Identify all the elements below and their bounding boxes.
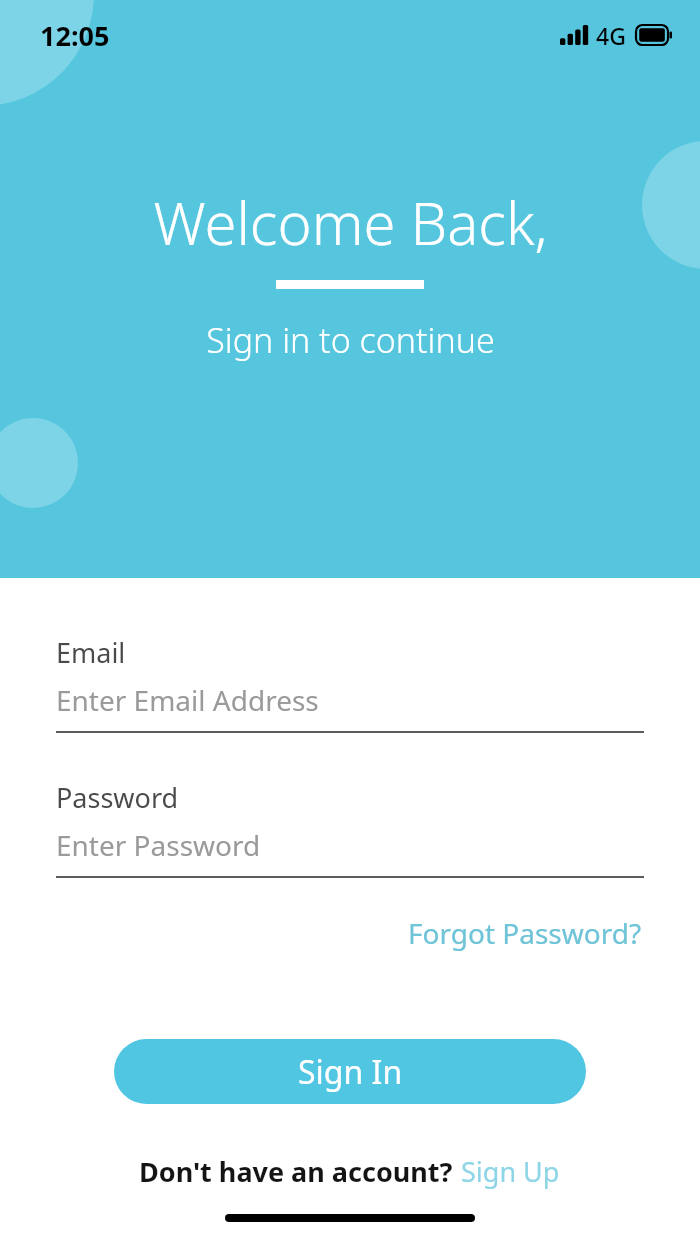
staticText: Forgot Password? [408, 914, 642, 952]
staticText: Don't have an account? [139, 1153, 460, 1190]
button[interactable]: Forgot Password? [406, 908, 644, 958]
staticText: Enter Email Address [56, 681, 319, 719]
staticText: Enter Password [56, 826, 261, 864]
button[interactable]: Sign Up [460, 1149, 561, 1194]
button[interactable]: Sign In [114, 1039, 586, 1104]
staticText: Welcome Back, [153, 183, 548, 262]
staticText: Sign in to continue [206, 317, 495, 363]
staticText: 12:05 [40, 17, 110, 54]
other: Home indicator [225, 1214, 475, 1222]
button[interactable]: Password [56, 779, 644, 878]
button[interactable]: Email [56, 634, 644, 733]
staticText: Sign Up [461, 1153, 560, 1190]
staticText: Sign In [298, 1050, 403, 1094]
staticText: 4G [596, 20, 626, 51]
staticText: Password [56, 779, 179, 816]
staticText: Email [56, 634, 126, 671]
